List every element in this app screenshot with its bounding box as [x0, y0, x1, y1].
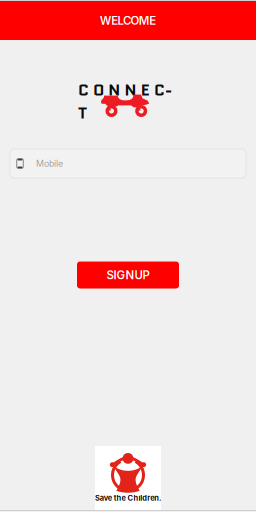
button[interactable]: SIGNUP: [77, 261, 179, 288]
button[interactable]: Mobile: [10, 149, 246, 178]
staticText: SIGNUP: [106, 268, 149, 282]
button[interactable]: WELCOME: [0, 1, 256, 40]
staticText: CONNECT: [78, 79, 178, 101]
staticText: WELCOME: [100, 14, 156, 27]
staticText: Mobile: [36, 158, 63, 169]
staticText: Save the Children.: [95, 493, 161, 502]
